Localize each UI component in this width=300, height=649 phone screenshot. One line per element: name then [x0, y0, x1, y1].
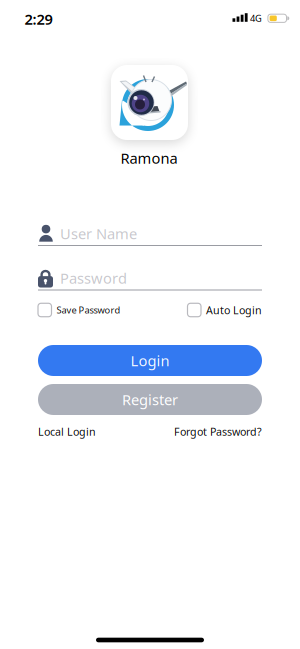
staticText: User Name	[60, 224, 137, 243]
staticText: Register	[122, 390, 178, 409]
staticText: Ramona	[120, 148, 177, 168]
button[interactable]: User Name	[38, 222, 262, 246]
staticText: 4G	[250, 12, 262, 24]
button[interactable]: Login	[38, 345, 262, 376]
button[interactable]: Auto Login	[38, 301, 262, 319]
button[interactable]: Forgot Password?	[38, 424, 262, 438]
staticText: Local Login	[38, 424, 96, 439]
button[interactable]: Password	[38, 266, 262, 290]
staticText: 2:29	[24, 9, 52, 29]
button[interactable]: Register	[38, 384, 262, 415]
staticText: Auto Login	[206, 303, 262, 317]
staticText: Password	[60, 268, 127, 288]
staticText: Forgot Password?	[174, 424, 262, 439]
staticText: Login	[130, 351, 169, 370]
staticText: Save Password	[56, 304, 120, 316]
button[interactable]: Local Login	[38, 424, 262, 438]
button[interactable]: Save Password	[38, 301, 262, 319]
